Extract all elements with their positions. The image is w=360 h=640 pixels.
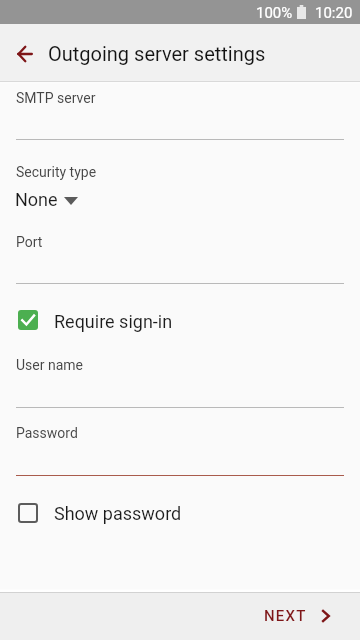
staticText: Require sign-in xyxy=(54,311,173,332)
staticText: Outgoing server settings xyxy=(48,42,266,65)
button[interactable]: NEXT xyxy=(264,593,360,640)
staticText: NEXT xyxy=(264,607,307,625)
staticText: 100% xyxy=(256,4,293,22)
staticText: SMTP server xyxy=(16,90,96,106)
staticText: Show password xyxy=(54,503,182,524)
staticText: Security type xyxy=(16,164,97,180)
staticText: User name xyxy=(16,357,83,373)
button[interactable]: Navigate up xyxy=(2,31,47,76)
button[interactable]: Security type dropdown xyxy=(64,197,78,205)
staticText: Port xyxy=(16,234,43,250)
staticText: Password xyxy=(16,425,78,441)
staticText: 10:20 xyxy=(315,4,353,22)
staticText: None xyxy=(15,189,58,210)
button[interactable]: Require sign-in, checked xyxy=(18,310,38,330)
button[interactable]: Show password, not checked xyxy=(18,503,38,523)
